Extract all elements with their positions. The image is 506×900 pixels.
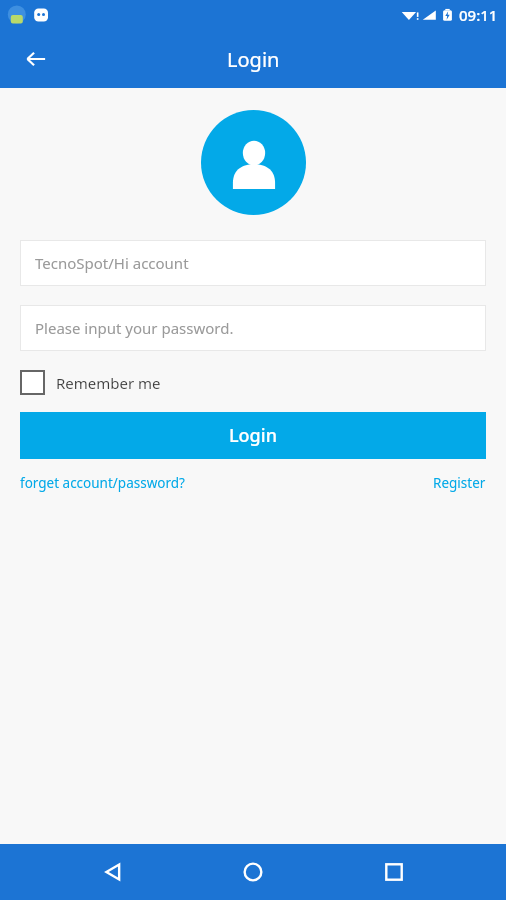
button[interactable]: Back <box>14 37 58 81</box>
button[interactable]: TecnoSpot/Hi account <box>20 240 486 286</box>
button[interactable]: Remember me <box>20 370 161 395</box>
staticText: 09:11 <box>459 5 498 25</box>
staticText: Please input your password. <box>35 318 234 338</box>
staticText: Login <box>229 423 277 448</box>
staticText: forget account/password? <box>20 474 185 492</box>
button[interactable]: Profile avatar <box>201 110 306 215</box>
button[interactable]: Back <box>85 844 141 900</box>
button[interactable]: forget account/password? <box>20 474 185 492</box>
staticText: Remember me <box>56 373 161 393</box>
button[interactable]: Please input your password. <box>20 305 486 351</box>
button[interactable]: Register <box>433 474 486 492</box>
staticText: Register <box>433 474 486 492</box>
button[interactable]: Login <box>20 412 486 459</box>
staticText: TecnoSpot/Hi account <box>35 253 189 273</box>
staticText: Login <box>227 46 280 73</box>
button[interactable]: Home <box>225 844 281 900</box>
button[interactable]: Recent apps <box>366 844 422 900</box>
